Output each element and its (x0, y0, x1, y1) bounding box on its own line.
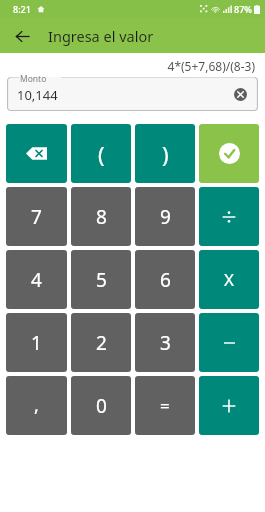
button[interactable] (199, 187, 259, 246)
staticText: 6 (160, 267, 171, 293)
button[interactable] (199, 376, 259, 435)
staticText: , (34, 393, 39, 418)
button[interactable]: 7 (6, 187, 67, 246)
button[interactable]: 5 (71, 250, 131, 309)
button[interactable]: 10,144 (7, 77, 258, 111)
button[interactable]: 9 (135, 187, 195, 246)
button[interactable]: 2 (71, 313, 131, 372)
staticText: 4*(5+7,68)/(8-3) (167, 58, 255, 74)
button[interactable]: Backspace (6, 124, 67, 183)
button[interactable]: 3 (135, 313, 195, 372)
staticText: 0 (96, 393, 107, 419)
staticText: 4 (31, 267, 42, 293)
button[interactable] (199, 313, 259, 372)
button[interactable]: 6 (135, 250, 195, 309)
staticText: 2 (96, 330, 107, 356)
staticText: 7 (31, 204, 42, 230)
staticText: 5 (96, 267, 107, 293)
button[interactable]: 4 (6, 250, 67, 309)
button[interactable]: , (6, 376, 67, 435)
staticText: Ingresa el valor (48, 26, 154, 46)
button[interactable]: X (199, 250, 259, 309)
staticText: 10,144 (17, 86, 58, 104)
staticText: 1 (31, 330, 42, 356)
button[interactable]: 1 (6, 313, 67, 372)
button[interactable]: 8 (71, 187, 131, 246)
button[interactable]: Clear (229, 83, 251, 105)
button[interactable]: = (135, 376, 195, 435)
button[interactable]: Back (8, 22, 36, 50)
staticText: 8:21 (13, 3, 31, 15)
staticText: ) (162, 139, 169, 169)
staticText: = (160, 394, 170, 417)
staticText: 9 (160, 204, 171, 230)
button[interactable]: 0 (71, 376, 131, 435)
button[interactable]: ) (135, 124, 195, 183)
staticText: ( (98, 139, 105, 169)
staticText: 8 (96, 204, 107, 230)
button[interactable]: Confirm (199, 124, 259, 183)
button[interactable]: ( (71, 124, 131, 183)
staticText: 87% (234, 3, 252, 15)
staticText: X (224, 268, 234, 291)
staticText: Monto (20, 73, 47, 85)
staticText: 3 (160, 330, 171, 356)
